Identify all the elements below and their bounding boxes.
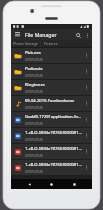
staticText: 09/09/2020 (25, 137, 44, 142)
button[interactable]: Pictures (11, 48, 92, 63)
button[interactable]: More options for 09-04-2019-Facebookwav (82, 99, 91, 108)
button[interactable]: Recent apps (70, 180, 79, 189)
button[interactable]: More options for Ringtones (82, 83, 91, 92)
button[interactable]: Godd9-17291application-form-al… (11, 112, 92, 127)
button[interactable]: Podcasts (11, 64, 92, 79)
button[interactable]: 1-sILO-5894e787653030081fe-main… (11, 128, 92, 143)
button[interactable]: More options for 1-sILO-5894e78765303008… (82, 163, 91, 172)
staticText: Ringtones (25, 82, 45, 88)
button[interactable]: Back (25, 180, 34, 189)
button[interactable]: More options for 1-sILO-5894e78765303008… (82, 147, 91, 156)
button[interactable]: Ringtones (11, 80, 92, 95)
button[interactable]: More options for Podcasts (82, 67, 91, 76)
button[interactable]: Search (73, 30, 83, 40)
staticText: 1-sILO-5894e787653030081fe-main… (25, 162, 82, 168)
staticText: 09/09/2020 (25, 169, 44, 174)
button[interactable]: More options for Pictures (82, 51, 91, 60)
button[interactable]: 1-sILO-5894e787653030081fe-main… (11, 160, 92, 175)
staticText: 09/09/2020 (25, 89, 44, 94)
button[interactable]: 09-04-2019-Facebookwav (11, 96, 92, 111)
button[interactable]: More options for 1-sILO-5894e78765303008… (82, 131, 91, 140)
staticText: | (38, 41, 44, 46)
button[interactable]: More options (83, 31, 91, 39)
staticText: 1-sILO-5894e787653030081fe-main… (25, 130, 82, 136)
staticText: Podcasts (25, 66, 43, 72)
staticText: 09/09/2020 (25, 153, 44, 158)
button[interactable]: More options for Godd9-17291application-… (82, 115, 91, 124)
button[interactable]: 1-sILO-5894e787653030081fe-main… (11, 144, 92, 159)
button[interactable]: Pictures (44, 41, 58, 46)
button[interactable]: Home (47, 180, 56, 189)
staticText: 1-sILO-5894e787653030081fe-main… (25, 146, 82, 152)
button[interactable]: Phone Storage (13, 41, 38, 46)
staticText: Pictures (25, 50, 41, 56)
button[interactable]: Open navigation menu (13, 30, 22, 39)
staticText: File Manager (25, 31, 57, 38)
staticText: 09/09/2020 (25, 73, 44, 78)
staticText: Godd9-17291application-form-al… (25, 114, 82, 120)
staticText: 09/09/2020 (25, 105, 44, 110)
staticText: 09-04-2019-Facebookwav (25, 98, 75, 104)
staticText: 09/09/2020 (25, 121, 44, 126)
staticText: 09/09/2020 (25, 57, 44, 62)
